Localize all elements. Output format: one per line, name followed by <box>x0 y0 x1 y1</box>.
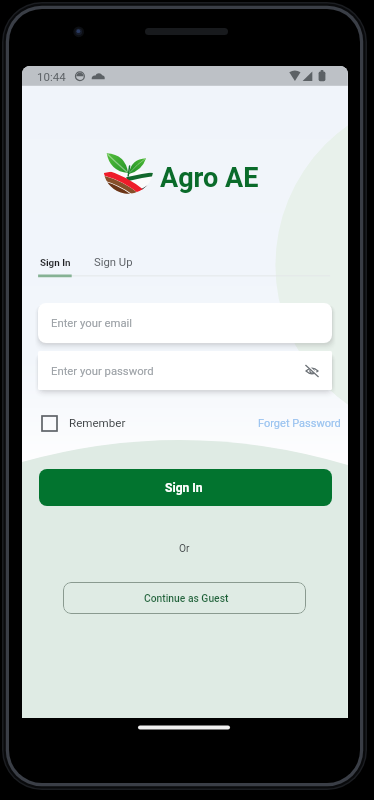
staticText: Sign In <box>165 481 203 495</box>
button[interactable]: Forget Password <box>22 66 105 79</box>
staticText: Enter your password <box>51 365 154 378</box>
staticText: Or <box>179 543 190 555</box>
staticText: Continue as Guest <box>144 592 229 604</box>
button[interactable]: Sign Up <box>22 66 61 79</box>
staticText: Enter your email <box>51 317 133 330</box>
button[interactable]: Remember me checkbox <box>42 416 57 431</box>
button[interactable] <box>63 582 306 614</box>
button[interactable]: Sign In <box>22 66 53 77</box>
staticText: 10:44 <box>37 70 66 83</box>
button[interactable]: Remember <box>22 66 79 80</box>
button[interactable]: Show password <box>300 360 324 382</box>
button[interactable] <box>38 303 332 343</box>
staticText: Agro AE <box>160 162 259 194</box>
button[interactable] <box>39 469 332 506</box>
button[interactable] <box>38 351 332 390</box>
